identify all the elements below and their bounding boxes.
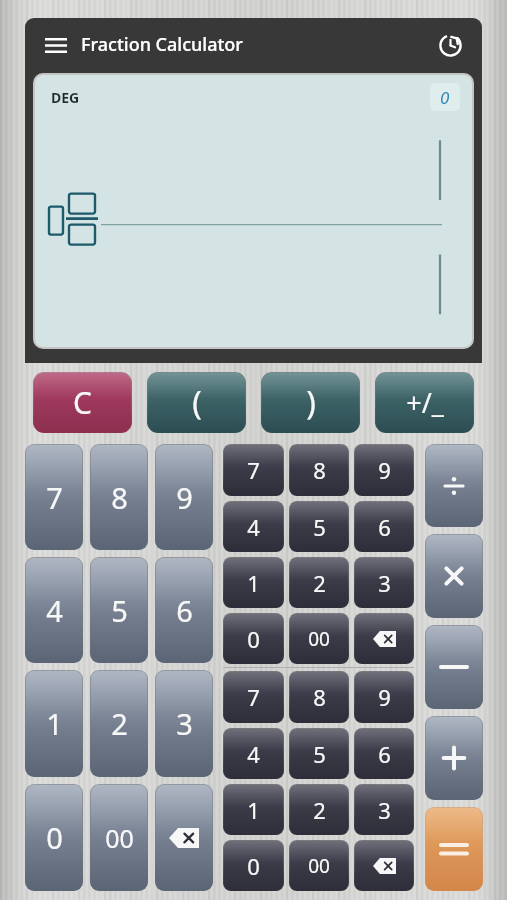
button[interactable]: 2 [290, 558, 348, 607]
staticText: 4 [46, 591, 63, 630]
button[interactable]: 0 [224, 614, 283, 663]
staticText: 00 [308, 626, 330, 652]
button[interactable]: 0 [26, 785, 82, 890]
button[interactable]: 4 [26, 558, 82, 662]
staticText: 7 [247, 455, 260, 485]
button[interactable]: Backspace [355, 841, 413, 890]
button[interactable]: 8 [290, 672, 348, 722]
button[interactable]: 3 [355, 785, 413, 834]
staticText: 8 [313, 682, 326, 712]
staticText: 6 [176, 591, 193, 630]
button[interactable]: Backspace [355, 614, 413, 663]
button[interactable]: 7 [224, 445, 283, 495]
button[interactable]: +/_ [376, 373, 473, 432]
staticText: 9 [378, 455, 391, 485]
button[interactable]: 3 [355, 558, 413, 607]
button[interactable]: Subtract [426, 626, 482, 708]
button[interactable]: 0 [224, 841, 283, 890]
staticText: 3 [378, 568, 391, 598]
staticText: 5 [111, 591, 128, 630]
staticText: 5 [313, 739, 326, 769]
staticText: 0 [247, 851, 260, 881]
button[interactable]: 00 [290, 614, 348, 663]
button[interactable]: Divide [426, 445, 482, 526]
staticText: 2 [313, 568, 326, 598]
staticText: 3 [176, 704, 193, 743]
button[interactable]: 8 [91, 445, 147, 549]
staticText: 4 [247, 512, 260, 542]
staticText: ) [306, 381, 316, 425]
button[interactable]: Equals [426, 808, 482, 890]
staticText: 8 [111, 478, 128, 517]
button[interactable]: ) [262, 373, 359, 432]
button[interactable]: ( [148, 373, 245, 432]
staticText: 6 [378, 512, 391, 542]
button[interactable]: 1 [224, 558, 283, 607]
staticText: 0 [46, 818, 63, 857]
staticText: 9 [378, 682, 391, 712]
staticText: 7 [247, 682, 260, 712]
staticText: 2 [111, 704, 128, 743]
button[interactable]: Backspace [156, 785, 212, 890]
button[interactable]: Multiply [426, 535, 482, 617]
button[interactable]: 0 [430, 83, 460, 111]
staticText: 8 [313, 455, 326, 485]
staticText: ( [192, 381, 202, 425]
staticText: 00 [105, 821, 134, 855]
button[interactable]: 1 [26, 671, 82, 776]
button[interactable]: History [432, 27, 468, 63]
button[interactable]: 9 [156, 445, 212, 549]
button[interactable]: 6 [355, 729, 413, 778]
button[interactable]: 7 [224, 672, 283, 722]
staticText: 7 [46, 478, 63, 517]
button[interactable]: 2 [290, 785, 348, 834]
staticText: 1 [46, 704, 63, 743]
button[interactable]: 00 [91, 785, 147, 890]
button[interactable]: C [34, 373, 131, 432]
staticText: 6 [378, 739, 391, 769]
staticText: 0 [440, 86, 450, 109]
staticText: 1 [247, 568, 260, 598]
staticText: 2 [313, 795, 326, 825]
button[interactable]: Menu [39, 28, 73, 62]
staticText: +/_ [406, 384, 444, 421]
staticText: C [73, 382, 92, 423]
staticText: 1 [247, 795, 260, 825]
button[interactable]: Add [426, 717, 482, 799]
button[interactable]: 3 [156, 671, 212, 776]
button[interactable]: 6 [355, 502, 413, 551]
button[interactable]: 6 [156, 558, 212, 662]
button[interactable]: 5 [91, 558, 147, 662]
button[interactable]: 2 [91, 671, 147, 776]
staticText: DEG [51, 88, 80, 107]
button[interactable]: 4 [224, 729, 283, 778]
staticText: 00 [308, 853, 330, 879]
button[interactable]: 5 [290, 729, 348, 778]
button[interactable]: 4 [224, 502, 283, 551]
staticText: 3 [378, 795, 391, 825]
button[interactable]: 1 [224, 785, 283, 834]
staticText: 0 [247, 624, 260, 654]
button[interactable]: 7 [26, 445, 82, 549]
button[interactable]: 00 [290, 841, 348, 890]
staticText: 4 [247, 739, 260, 769]
button[interactable]: 8 [290, 445, 348, 495]
button[interactable]: 5 [290, 502, 348, 551]
button[interactable]: 9 [355, 672, 413, 722]
button[interactable]: 9 [355, 445, 413, 495]
staticText: Fraction Calculator [81, 32, 243, 57]
staticText: 9 [176, 478, 193, 517]
staticText: 5 [313, 512, 326, 542]
